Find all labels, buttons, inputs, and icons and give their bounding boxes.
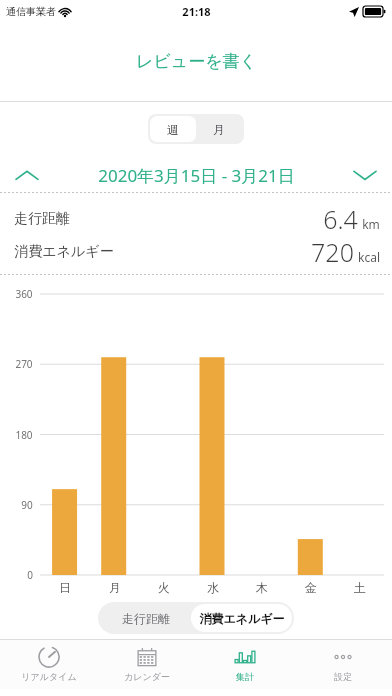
staticText: 21:18 <box>182 4 211 19</box>
button[interactable]: 集計 <box>196 640 294 689</box>
button[interactable]: レビューを書く <box>0 22 392 101</box>
staticText: 走行距離 <box>14 210 70 228</box>
staticText: 180 <box>15 428 33 442</box>
staticText: 水 <box>207 580 219 595</box>
button[interactable]: 週 <box>150 116 196 142</box>
staticText: 土 <box>354 580 366 595</box>
staticText: 消費エネルギー <box>14 243 114 261</box>
button[interactable]: 消費エネルギー <box>0 235 392 268</box>
staticText: 2020年3月15日 - 3月21日 <box>98 164 295 187</box>
staticText: 設定 <box>334 671 352 682</box>
staticText: 火 <box>158 580 170 595</box>
staticText: 消費エネルギー <box>199 611 285 626</box>
staticText: 木 <box>256 580 268 595</box>
staticText: 走行距離 <box>122 611 170 626</box>
staticText: 0 <box>27 568 33 582</box>
staticText: 月 <box>213 122 225 137</box>
button[interactable]: 走行距離 <box>0 202 392 235</box>
staticText: 6.4 <box>323 202 358 235</box>
staticText: 270 <box>15 357 33 371</box>
button[interactable]: カレンダー <box>98 640 196 689</box>
staticText: 90 <box>21 498 33 512</box>
button[interactable]: Next week <box>338 159 392 192</box>
button[interactable]: リアルタイム <box>0 640 98 689</box>
button[interactable]: 月 <box>196 116 242 142</box>
button[interactable]: 走行距離 <box>100 604 191 632</box>
button[interactable]: Previous week <box>0 159 54 192</box>
staticText: kcal <box>358 249 380 265</box>
staticText: 金 <box>305 580 317 595</box>
staticText: 月 <box>109 580 121 595</box>
staticText: 集計 <box>236 671 254 682</box>
staticText: レビューを書く <box>136 51 257 72</box>
staticText: 360 <box>15 287 33 301</box>
staticText: 日 <box>59 580 71 595</box>
staticText: km <box>362 216 380 232</box>
staticText: 720 <box>311 235 354 268</box>
staticText: カレンダー <box>124 671 170 682</box>
staticText: 通信事業者 <box>6 5 56 18</box>
button[interactable]: 設定 <box>294 640 392 689</box>
staticText: リアルタイム <box>21 671 77 682</box>
staticText: 週 <box>167 122 179 137</box>
button[interactable]: 消費エネルギー <box>191 604 292 632</box>
